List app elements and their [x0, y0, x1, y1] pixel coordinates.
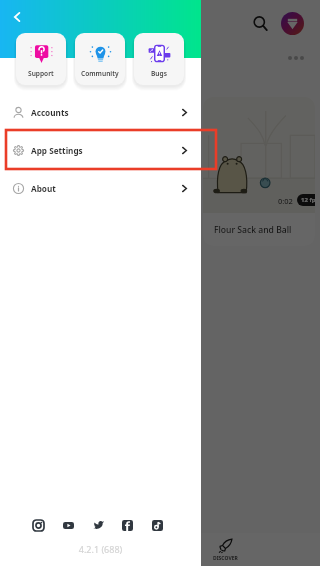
button[interactable]: DISCOVER: [203, 533, 248, 566]
staticText: Community: [81, 69, 119, 78]
button[interactable]: About: [0, 169, 201, 207]
staticText: App Settings: [31, 145, 83, 156]
button[interactable]: Twitter: [88, 515, 108, 535]
button[interactable]: Back: [5, 5, 29, 29]
staticText: 0:02: [278, 196, 293, 206]
button[interactable]: Accounts: [0, 93, 201, 131]
button[interactable]: Premium: [281, 12, 304, 35]
staticText: Support: [28, 69, 54, 78]
staticText: 4.2.1 (688): [0, 543, 201, 555]
button[interactable]: TikTok: [147, 515, 167, 535]
button[interactable]: Support: [16, 33, 66, 85]
staticText: Bugs: [151, 69, 167, 78]
button[interactable]: Bugs: [134, 33, 184, 85]
staticText: DISCOVER: [213, 555, 238, 562]
button[interactable]: Facebook: [117, 515, 137, 535]
staticText: Flour Sack and Ball: [214, 224, 292, 236]
button[interactable]: Instagram: [28, 515, 48, 535]
button[interactable]: App Settings: [0, 131, 201, 169]
staticText: About: [31, 183, 56, 194]
staticText: Accounts: [31, 107, 69, 118]
button[interactable]: YouTube: [58, 515, 78, 535]
staticText: 12 fps: [301, 196, 315, 204]
button[interactable]: Community: [75, 33, 125, 85]
button[interactable]: Search: [245, 8, 275, 38]
